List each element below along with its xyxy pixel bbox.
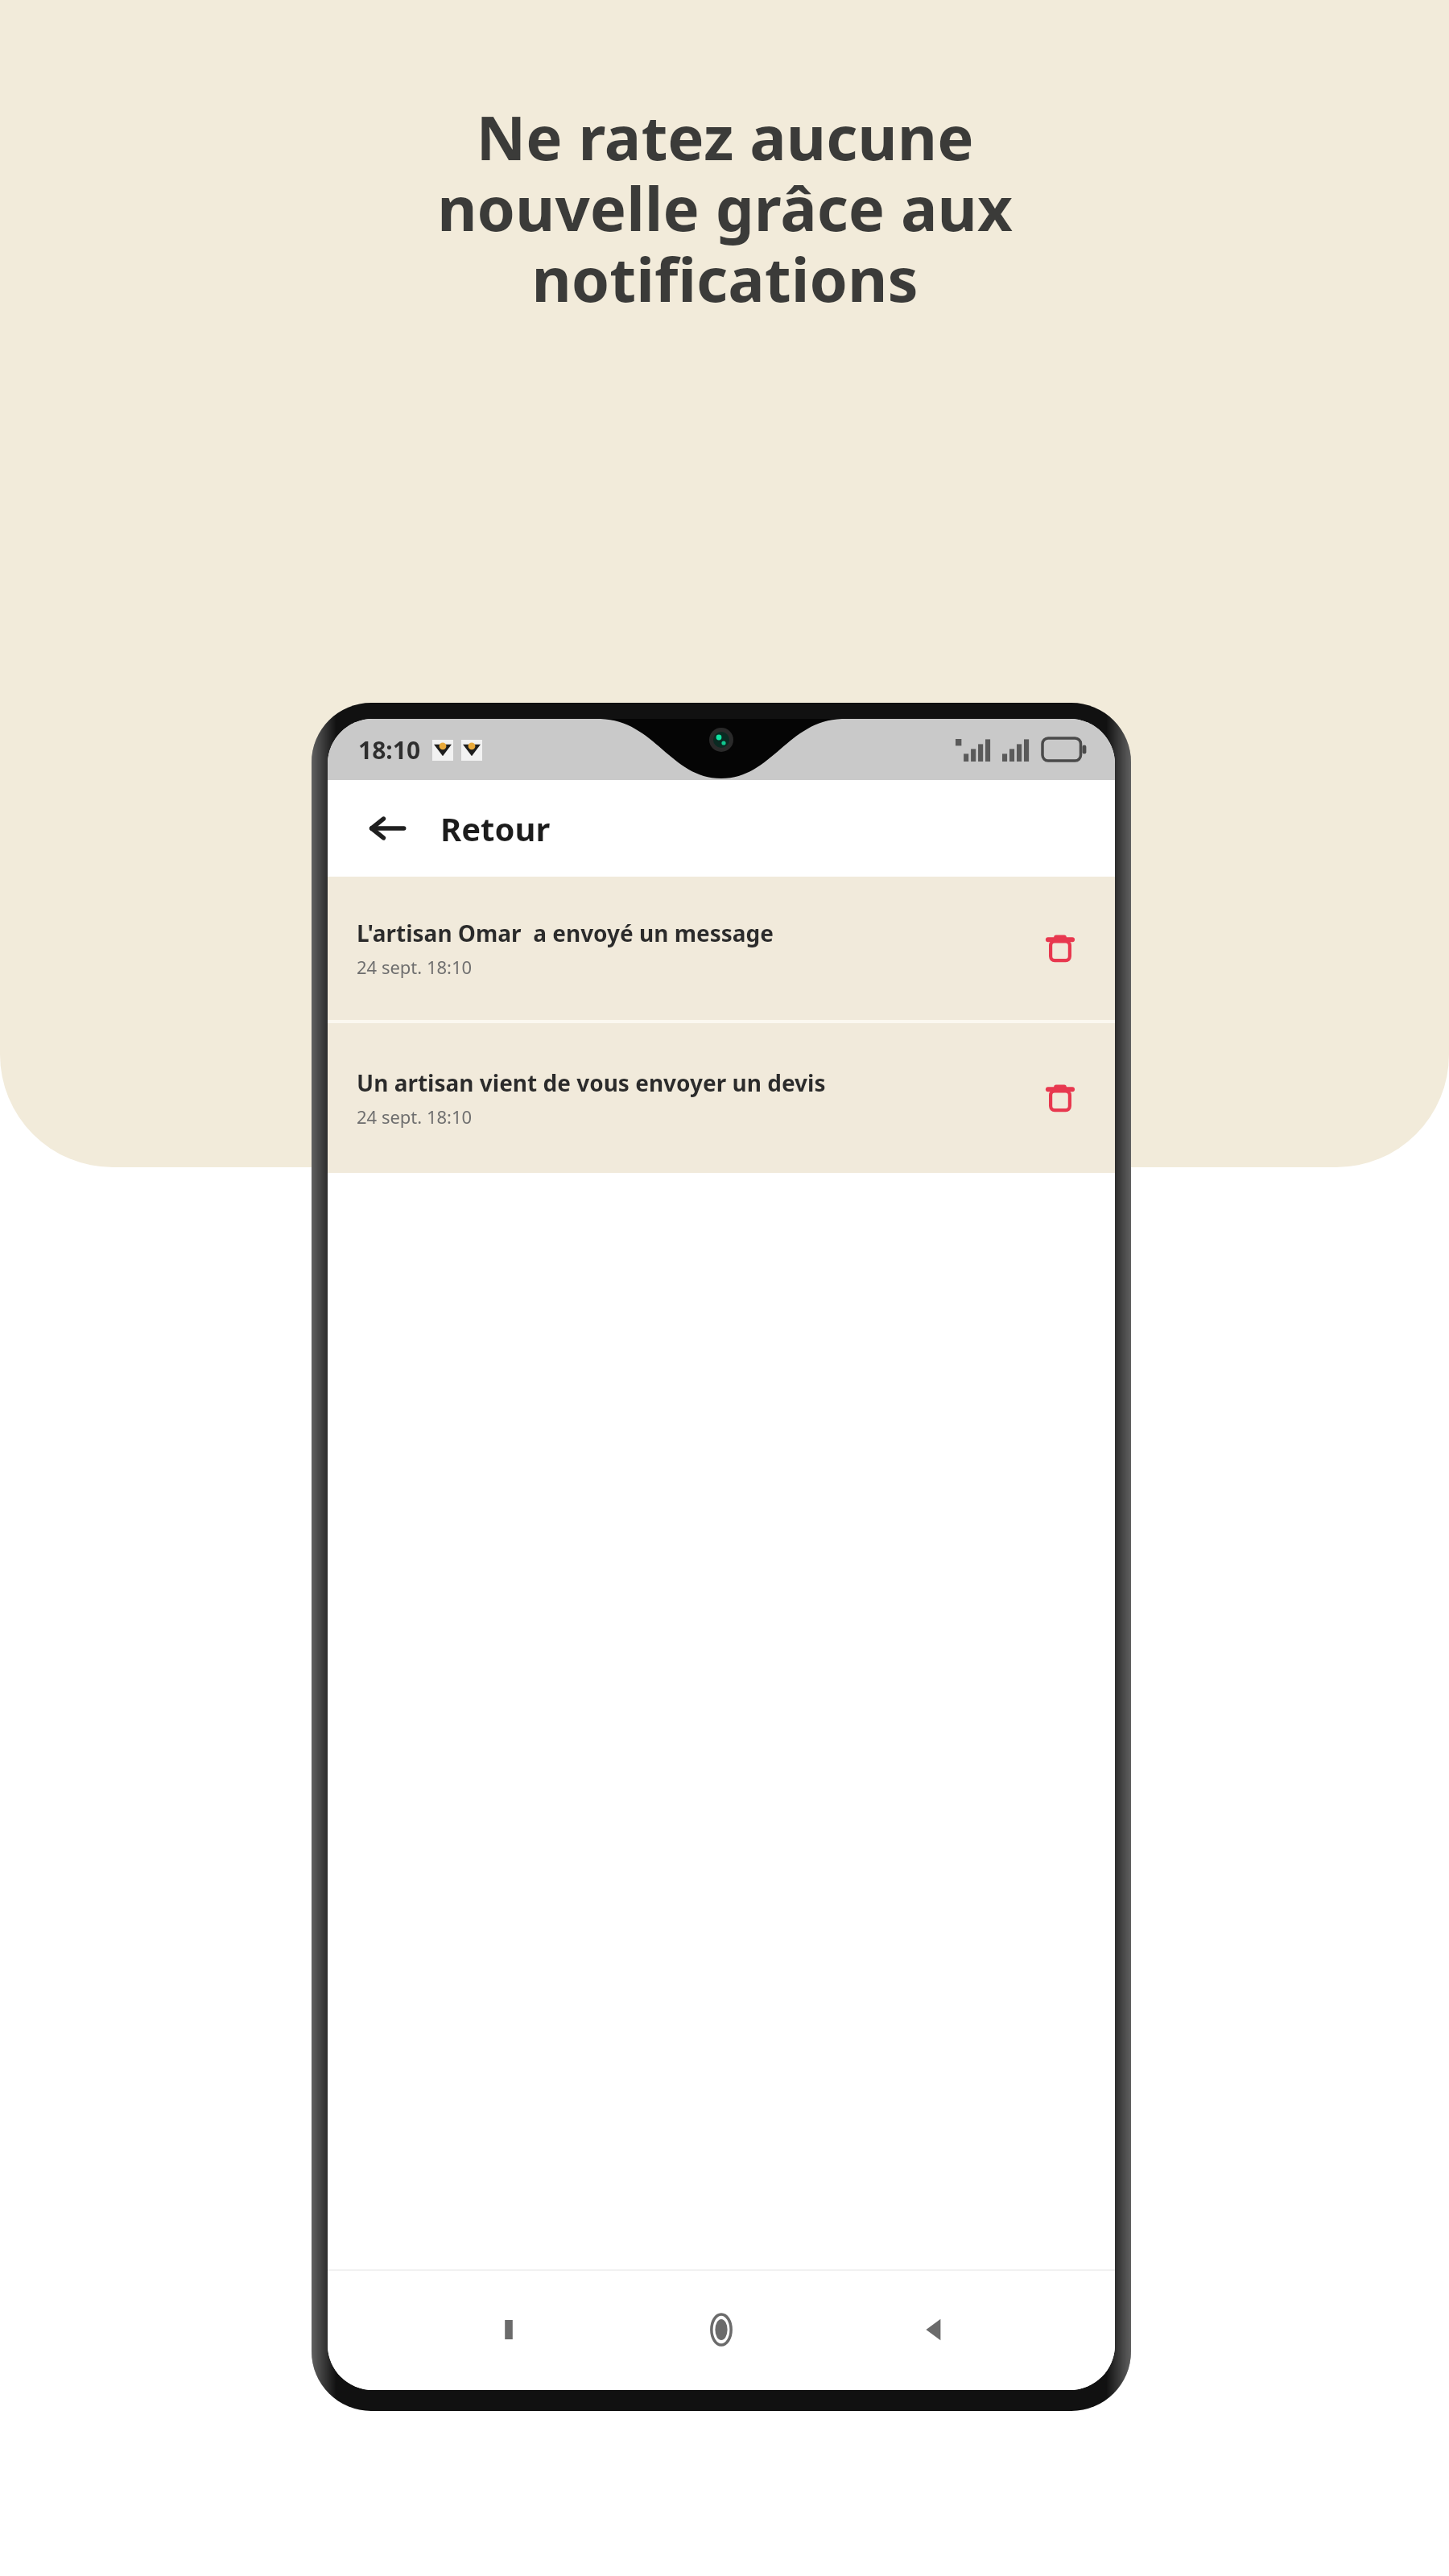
button[interactable]: Back	[358, 799, 416, 857]
button[interactable]: Delete notification	[1034, 923, 1086, 974]
button[interactable]: Back	[906, 2301, 962, 2358]
staticText: Un artisan vient de vous envoyer un devi…	[357, 1067, 826, 1098]
button[interactable]: Un artisan vient de vous envoyer un devi…	[328, 1023, 1115, 1173]
staticText: 24 sept. 18:10	[357, 955, 473, 979]
button[interactable]: L'artisan Omar a envoyé un message	[328, 877, 1115, 1020]
staticText: L'artisan Omar a envoyé un message	[357, 918, 774, 948]
button[interactable]: Delete notification	[1034, 1072, 1086, 1124]
staticText: 24 sept. 18:10	[357, 1104, 473, 1129]
button[interactable]: Recent apps	[481, 2301, 537, 2358]
staticText: Retour	[440, 807, 551, 850]
staticText: Ne ratez aucune nouvelle grâce aux notif…	[437, 95, 1013, 320]
staticText: 18:10	[358, 733, 421, 766]
button[interactable]: Home	[693, 2301, 749, 2358]
